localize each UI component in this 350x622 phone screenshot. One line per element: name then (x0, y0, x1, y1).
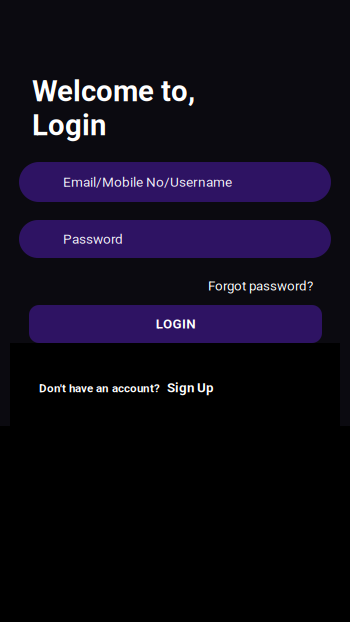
button[interactable]: Email/Mobile No/Username (19, 162, 331, 202)
staticText: Password (63, 231, 123, 247)
staticText: Don't have an account? (39, 381, 160, 395)
staticText: Email/Mobile No/Username (63, 174, 232, 190)
staticText: LOGIN (156, 316, 195, 332)
staticText: Login (32, 108, 106, 142)
staticText: Welcome to, (32, 74, 195, 108)
button[interactable]: LOGIN (29, 305, 322, 343)
staticText: Forgot password? (208, 278, 313, 294)
staticText: Sign Up (167, 380, 214, 396)
button[interactable]: Forgot password? (195, 277, 313, 295)
button[interactable]: Sign Up (164, 377, 217, 399)
button[interactable]: Password (19, 220, 331, 258)
